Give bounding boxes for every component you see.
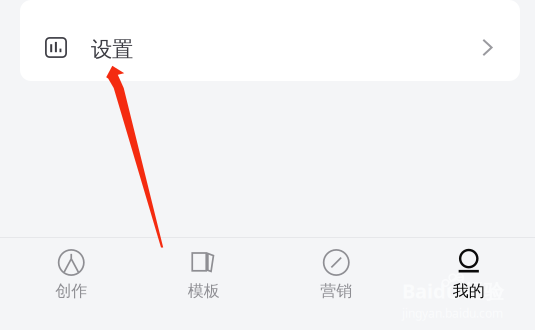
button[interactable]: 营销 <box>270 238 402 330</box>
button[interactable]: 模板 <box>137 238 270 330</box>
staticText: 创作 <box>55 281 87 301</box>
staticText: Baidu 经验 <box>402 277 504 304</box>
button[interactable]: 设置 <box>20 0 520 81</box>
staticText: 营销 <box>320 281 352 301</box>
button[interactable]: 创作 <box>5 238 137 330</box>
staticText: 设置 <box>91 36 133 63</box>
staticText: 我的 <box>453 281 485 301</box>
button[interactable]: 我的 <box>402 238 535 330</box>
staticText: 模板 <box>188 281 220 301</box>
